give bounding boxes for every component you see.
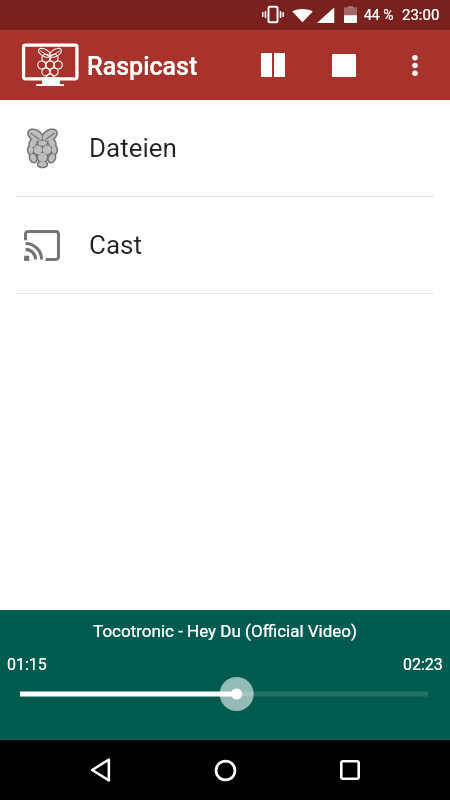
staticText: Tocotronic - Hey Du (Official Video) bbox=[0, 621, 450, 641]
staticText: Cast bbox=[89, 230, 142, 260]
staticText: 01:15 bbox=[7, 655, 47, 674]
button[interactable]: Dateien bbox=[0, 100, 450, 196]
button[interactable]: Back bbox=[76, 746, 124, 794]
staticText: 02:23 bbox=[403, 655, 443, 674]
staticText: 23:00 bbox=[402, 6, 440, 24]
staticText: 44 % bbox=[364, 7, 394, 23]
staticText: Dateien bbox=[89, 133, 177, 163]
button[interactable]: Seek bar bbox=[0, 682, 450, 726]
button[interactable]: Pause bbox=[249, 41, 297, 89]
button[interactable]: Recents bbox=[326, 746, 374, 794]
button[interactable]: Home bbox=[201, 746, 249, 794]
button[interactable]: Cast bbox=[0, 197, 450, 293]
button[interactable]: More options bbox=[391, 41, 439, 89]
button[interactable]: Stop bbox=[320, 41, 368, 89]
staticText: Raspicast bbox=[87, 52, 198, 81]
